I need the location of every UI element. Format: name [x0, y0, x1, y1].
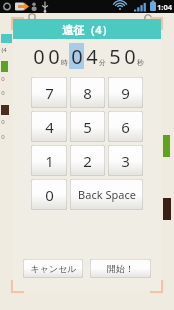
staticText: 3	[121, 151, 130, 171]
button[interactable]: 開始！	[90, 259, 151, 278]
button[interactable]: Back Space	[70, 179, 143, 210]
staticText: 遠征（4）	[62, 22, 113, 37]
button[interactable]: 4	[31, 111, 67, 142]
button[interactable]: 6	[108, 111, 143, 142]
staticText: 4	[45, 117, 54, 137]
button[interactable]: 8	[70, 77, 105, 108]
button[interactable]: 9	[108, 77, 143, 108]
staticText: 2	[83, 151, 92, 171]
staticText: 0	[1, 89, 5, 97]
staticText: 1	[45, 151, 54, 171]
staticText: 0	[45, 185, 54, 205]
staticText: 0	[33, 43, 45, 69]
staticText: 8	[83, 83, 92, 103]
button[interactable]: キャンセル	[23, 259, 83, 278]
button[interactable]: 2	[70, 145, 105, 176]
staticText: (4	[1, 46, 7, 54]
staticText: 1:04	[157, 2, 172, 12]
button[interactable]: 1	[31, 145, 67, 176]
staticText: 5	[83, 117, 92, 137]
staticText: 開始！	[107, 263, 134, 274]
staticText: 0	[124, 43, 136, 69]
staticText: キャンセル	[30, 263, 77, 274]
staticText: 4	[86, 43, 98, 69]
button[interactable]: 7	[31, 77, 67, 108]
staticText: 秒	[137, 58, 144, 67]
staticText: 0	[1, 118, 5, 126]
staticText: 0	[48, 43, 60, 69]
button[interactable]: 0	[31, 179, 67, 210]
staticText: 9	[121, 83, 130, 103]
staticText: Back Space	[78, 187, 136, 202]
staticText: 分	[99, 58, 106, 67]
staticText: 0	[1, 75, 5, 83]
button[interactable]: 5	[70, 111, 105, 142]
staticText: 5	[109, 43, 121, 69]
staticText: 7	[45, 83, 54, 103]
staticText: 0	[71, 43, 83, 69]
staticText: 6	[121, 117, 130, 137]
staticText: 時	[61, 58, 68, 67]
button[interactable]: 3	[108, 145, 143, 176]
staticText: 0	[1, 133, 5, 141]
